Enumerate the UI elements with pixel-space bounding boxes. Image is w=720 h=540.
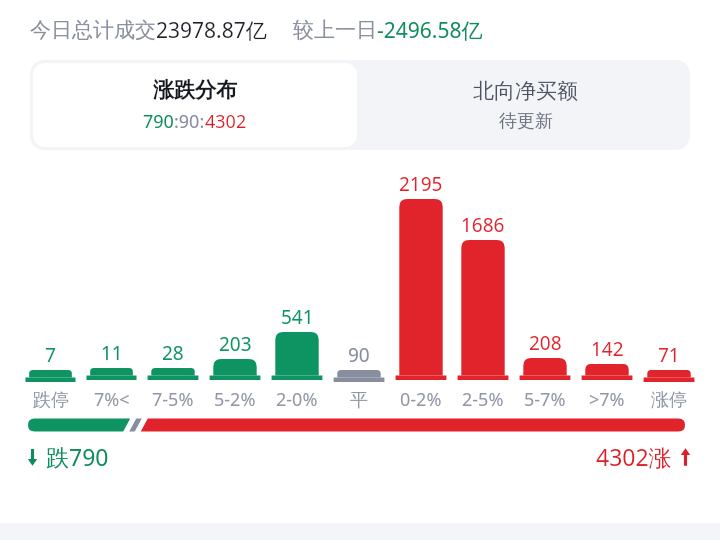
button[interactable]: 203 — [204, 150, 266, 412]
button[interactable]: 7 — [20, 150, 81, 412]
staticText: 4302涨 — [596, 441, 672, 472]
staticText: 2-5% — [462, 387, 504, 412]
button[interactable]: 11 — [81, 150, 142, 412]
staticText: 7-5% — [152, 387, 194, 412]
staticText: 7 — [45, 342, 56, 368]
other: Decliners — [26, 447, 39, 467]
staticText: 涨跌分布 — [153, 77, 237, 103]
button[interactable]: Decliners — [26, 441, 109, 472]
button[interactable]: 208 — [514, 150, 576, 412]
staticText: 待更新 — [499, 110, 553, 133]
staticText: 203 — [219, 331, 252, 357]
staticText: 0-2% — [400, 387, 442, 412]
staticText: 5-2% — [214, 387, 256, 412]
staticText: 5-7% — [524, 387, 566, 412]
staticText: 23978.87亿 — [156, 16, 267, 45]
staticText: -2496.58亿 — [377, 16, 483, 45]
button[interactable]: 142 — [576, 150, 638, 412]
staticText: 71 — [658, 342, 680, 368]
staticText: 较上一日 — [293, 17, 377, 43]
staticText: 跌停 — [33, 389, 69, 412]
staticText: 4302 — [205, 109, 247, 134]
staticText: 90 — [348, 342, 370, 368]
staticText: 28 — [162, 340, 184, 366]
button[interactable]: 28 — [142, 150, 204, 412]
button[interactable]: 90 — [328, 150, 390, 412]
staticText: 2-0% — [276, 387, 318, 412]
staticText: 790 — [143, 109, 174, 134]
button[interactable]: 541 — [266, 150, 328, 412]
staticText: 1686 — [461, 212, 505, 238]
button[interactable]: 北向净买额 — [360, 60, 690, 150]
staticText: 今日总计成交 — [30, 17, 156, 43]
staticText: 平 — [350, 389, 368, 412]
staticText: 142 — [591, 336, 624, 362]
staticText: 跌790 — [46, 441, 109, 472]
button[interactable]: 71 — [638, 150, 700, 412]
button[interactable]: 4302涨 — [596, 441, 692, 472]
staticText: 北向净买额 — [473, 78, 578, 104]
staticText: >7% — [589, 387, 625, 412]
button[interactable]: 1686 — [452, 150, 514, 412]
button[interactable]: 涨跌分布 — [33, 63, 357, 147]
other: Advancers — [679, 447, 692, 467]
staticText: 541 — [281, 304, 314, 330]
button[interactable]: 2195 — [390, 150, 452, 412]
staticText: 2195 — [399, 171, 443, 197]
staticText: 涨停 — [651, 389, 687, 412]
staticText: 208 — [529, 330, 562, 356]
staticText: :90: — [174, 109, 205, 134]
staticText: 7%< — [94, 387, 130, 412]
staticText: 11 — [101, 340, 123, 366]
